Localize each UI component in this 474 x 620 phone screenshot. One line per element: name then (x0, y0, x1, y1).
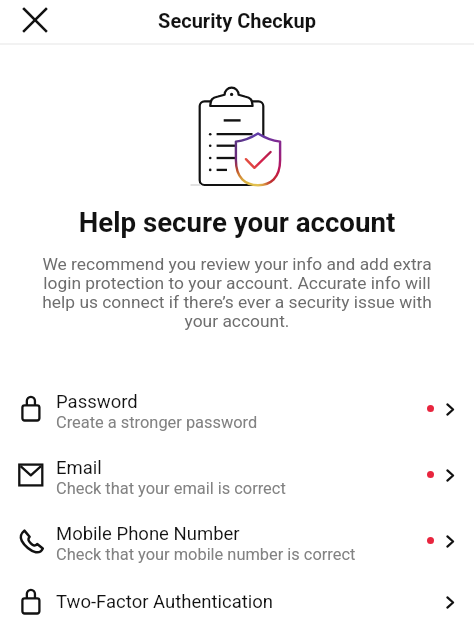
button[interactable]: Mobile Phone Number (0, 511, 474, 577)
button[interactable]: Password (0, 379, 474, 445)
staticText: Two-Factor Authentication (56, 591, 274, 613)
staticText: Email (56, 457, 102, 479)
staticText: Help secure your account (0, 206, 474, 238)
staticText: Password (56, 391, 138, 413)
staticText: Mobile Phone Number (56, 523, 240, 545)
staticText: Check that your email is correct (56, 479, 286, 498)
staticText: Security Checkup (0, 9, 474, 32)
staticText: We recommend you review your info and ad… (36, 254, 438, 332)
button[interactable]: Email (0, 445, 474, 511)
button[interactable]: Two-Factor Authentication (0, 577, 474, 620)
staticText: Check that your mobile number is correct (56, 545, 356, 564)
button[interactable]: Close (13, 0, 57, 42)
staticText: Create a stronger password (56, 413, 258, 432)
